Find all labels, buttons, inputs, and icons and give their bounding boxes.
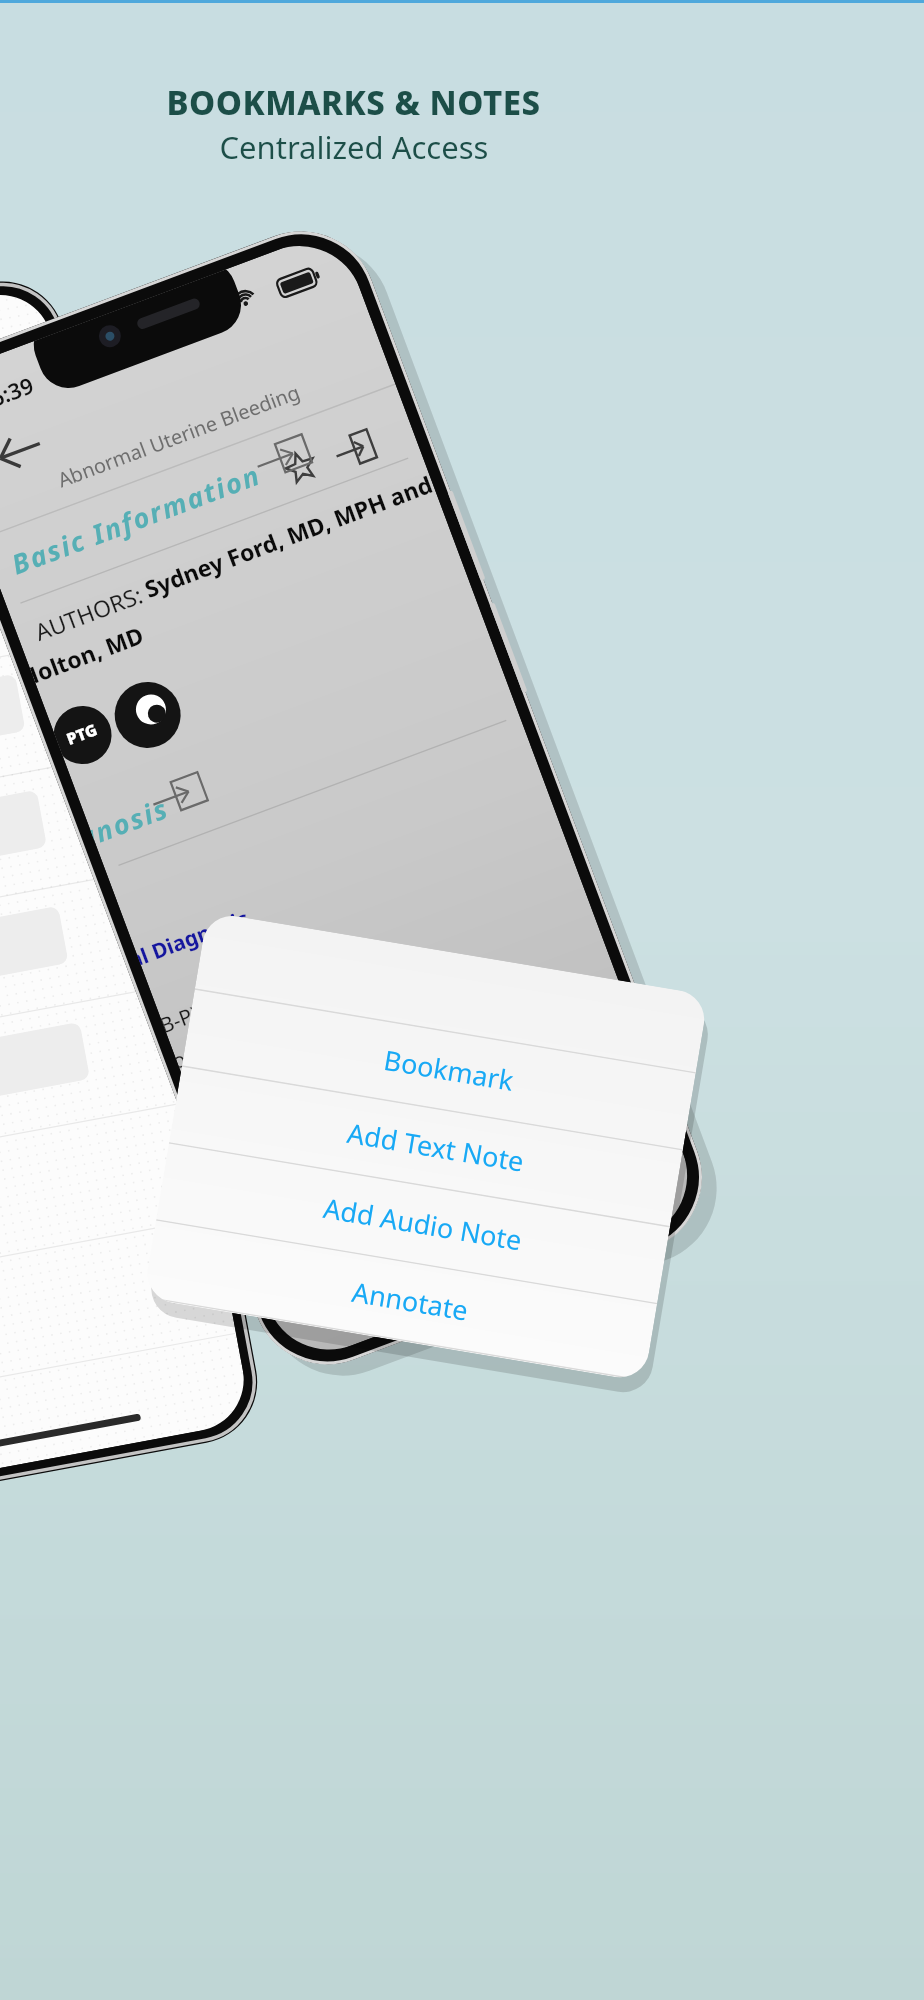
button[interactable]: Back [122, 352, 170, 396]
button[interactable]: Bookmark [446, 466, 484, 504]
button[interactable] [350, 1020, 650, 1058]
button[interactable] [304, 1090, 604, 1128]
button[interactable] [278, 1246, 578, 1284]
button[interactable] [270, 1168, 570, 1206]
